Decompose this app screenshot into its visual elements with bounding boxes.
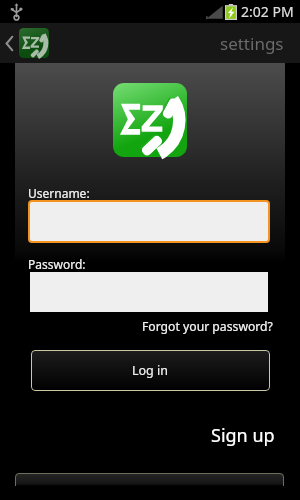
button[interactable]: Back [0,24,53,62]
button[interactable]: Log in [31,350,270,391]
staticText: Log in [132,362,169,379]
staticText: settings [220,32,284,55]
button[interactable]: More [15,473,284,500]
staticText: 2:02 PM [241,2,294,21]
staticText: Password: [28,256,86,272]
staticText: Username: [28,185,90,201]
button[interactable]: Sign up [211,421,300,450]
button[interactable]: Forgot your password? [142,316,300,337]
